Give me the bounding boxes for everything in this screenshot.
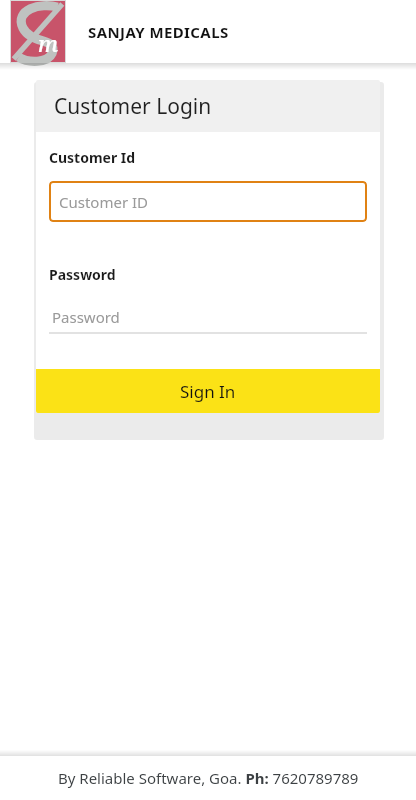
staticText: Sign In — [180, 380, 236, 403]
staticText: Password — [52, 307, 120, 327]
staticText: Customer Login — [54, 92, 212, 121]
staticText: SANJAY MEDICALS — [88, 22, 229, 42]
staticText: Customer ID — [59, 192, 149, 212]
staticText: m — [38, 28, 59, 58]
button[interactable]: Password — [49, 302, 367, 334]
staticText: Password — [49, 265, 116, 284]
button[interactable]: Customer ID — [49, 181, 367, 222]
button[interactable]: Sign In — [36, 369, 380, 413]
staticText: Customer Id — [49, 148, 136, 167]
staticText: By Reliable Software, Goa. Ph: 762078978… — [58, 768, 359, 788]
other: Sanjay Medicals logo — [10, 0, 66, 63]
